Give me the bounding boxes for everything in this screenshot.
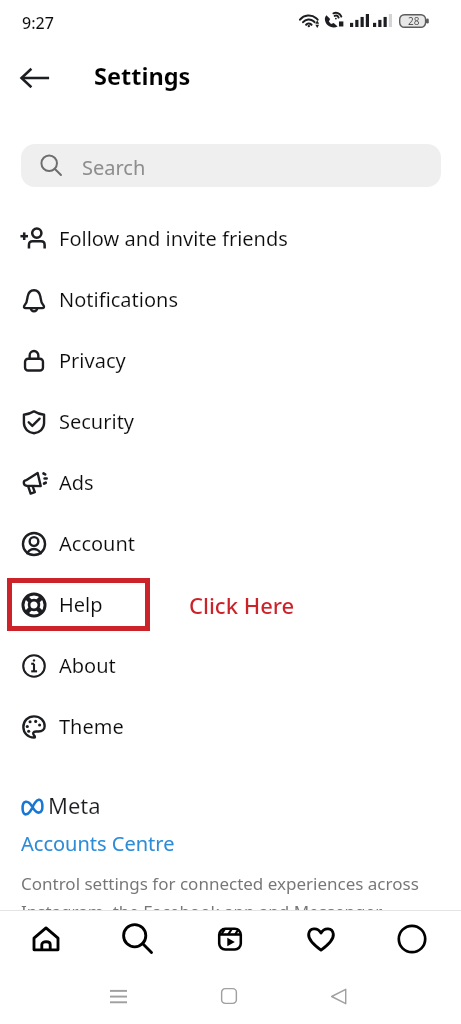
button[interactable]: Ads [0, 452, 461, 513]
button[interactable]: Theme [0, 696, 461, 757]
button[interactable]: Follow and invite friends [0, 208, 461, 269]
button[interactable]: Activity [292, 910, 350, 967]
button[interactable]: Search [109, 910, 167, 967]
button[interactable]: Home [211, 978, 247, 1014]
staticText: Search [82, 154, 146, 181]
button[interactable]: Search [21, 144, 441, 187]
button[interactable]: Security [0, 391, 461, 452]
button[interactable]: Back [320, 978, 356, 1014]
staticText: Security [59, 408, 135, 435]
staticText: Settings [94, 60, 191, 92]
staticText: Account [59, 530, 136, 557]
staticText: Ads [59, 469, 94, 496]
staticText: Privacy [59, 347, 126, 374]
button[interactable]: Privacy [0, 330, 461, 391]
button[interactable]: Accounts Centre [21, 830, 175, 857]
staticText: Click Here [189, 590, 295, 620]
button[interactable]: Help [0, 574, 461, 635]
button[interactable]: Back [11, 54, 59, 102]
staticText: Help [59, 591, 103, 618]
button[interactable]: Reels [201, 910, 259, 967]
staticText: Follow and invite friends [59, 225, 288, 252]
button[interactable]: Account [0, 513, 461, 574]
staticText: Notifications [59, 286, 178, 313]
staticText: Control settings for connected experienc… [21, 872, 441, 923]
button[interactable]: Notifications [0, 269, 461, 330]
staticText: 28 [408, 14, 420, 28]
staticText: Theme [59, 713, 124, 740]
button[interactable]: Recent apps [100, 978, 136, 1014]
button[interactable]: Profile [383, 910, 441, 967]
staticText: Meta [48, 790, 101, 820]
button[interactable]: Home [17, 910, 75, 967]
staticText: About [59, 652, 116, 679]
staticText: 9:27 [22, 12, 54, 34]
button[interactable]: About [0, 635, 461, 696]
